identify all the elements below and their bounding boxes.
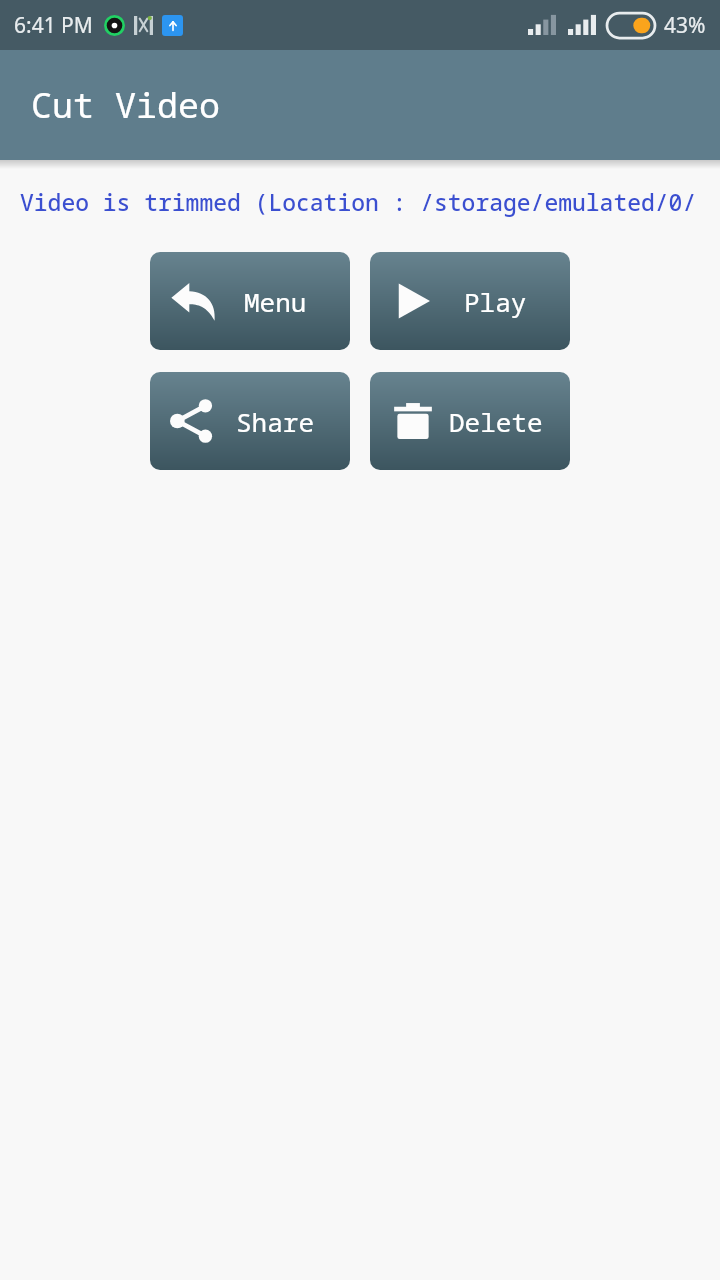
staticText: Delete [449,404,543,439]
staticText: Cut Video [31,81,221,129]
button[interactable]: Share [150,372,350,470]
staticText: 6:41 PM [14,11,93,40]
staticText: Play [464,284,527,319]
staticText: Share [236,404,315,439]
button[interactable]: Play [370,252,570,350]
button[interactable]: Menu [150,252,350,350]
staticText: 43% [664,11,706,40]
staticText: Menu [244,284,307,319]
staticText: Video is trimmed (Location : /storage/em… [20,186,720,217]
button[interactable]: Delete [370,372,570,470]
